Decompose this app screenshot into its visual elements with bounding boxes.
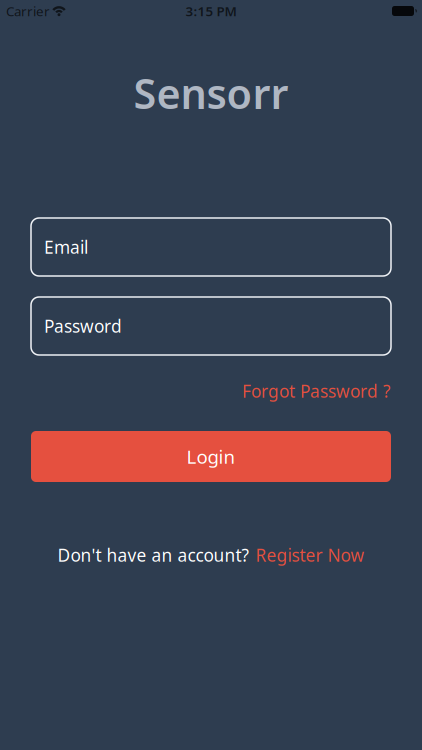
staticText: Email (44, 235, 88, 258)
staticText: 3:15 PM (185, 2, 236, 20)
staticText: Password (44, 314, 122, 337)
button[interactable]: Don't have an account? (57, 546, 364, 564)
staticText: Don't have an account? (57, 543, 249, 566)
staticText: Carrier (6, 2, 50, 20)
staticText: Sensorr (133, 66, 288, 120)
button[interactable]: Email (31, 218, 391, 276)
button[interactable]: Forgot Password ? (242, 379, 391, 402)
staticText: Register Now (255, 543, 364, 566)
staticText: Forgot Password ? (242, 379, 391, 402)
button[interactable]: Password (31, 297, 391, 355)
button[interactable]: Login (31, 431, 391, 482)
staticText: Login (186, 444, 235, 469)
